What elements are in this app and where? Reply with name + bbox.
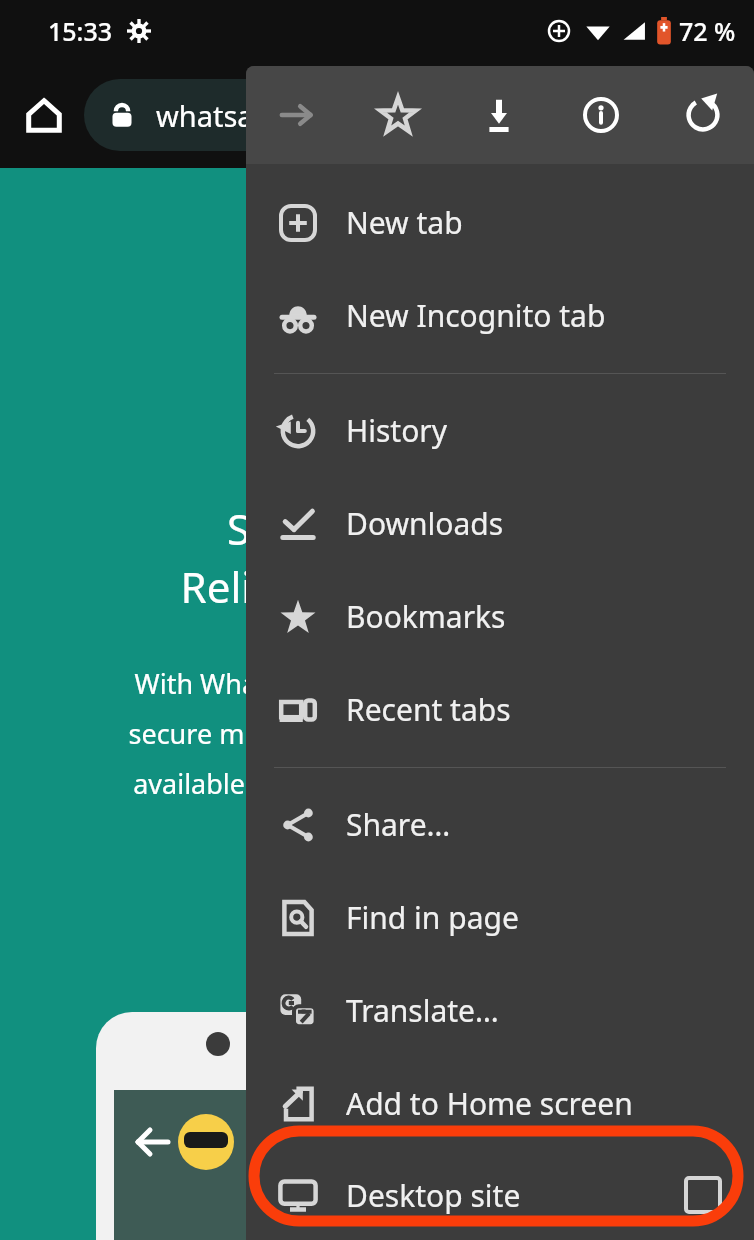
staticText: Simple. Secure. Reliable messaging. bbox=[0, 500, 754, 615]
button[interactable]: Share… bbox=[246, 778, 754, 871]
staticText: Add to Home screen bbox=[346, 1083, 722, 1124]
staticText: 15:33 bbox=[48, 14, 113, 48]
staticText: Recent tabs bbox=[346, 689, 722, 730]
button[interactable]: Translate… bbox=[246, 964, 754, 1057]
button[interactable]: Desktop site bbox=[246, 1150, 754, 1240]
staticText: Translate… bbox=[346, 990, 722, 1031]
button[interactable]: whatsapp.com bbox=[84, 79, 754, 151]
button[interactable]: Page info bbox=[550, 66, 652, 164]
button[interactable]: Find in page bbox=[246, 871, 754, 964]
staticText: Bookmarks bbox=[346, 596, 722, 637]
staticText: New Incognito tab bbox=[346, 295, 722, 336]
button[interactable]: Bookmarks bbox=[246, 570, 754, 663]
staticText: History bbox=[346, 410, 722, 451]
staticText: 72 % bbox=[679, 14, 736, 48]
button[interactable]: New Incognito tab bbox=[246, 269, 754, 362]
button[interactable]: Home bbox=[16, 87, 72, 143]
staticText: whatsapp.com bbox=[156, 96, 356, 135]
staticText: Desktop site bbox=[346, 1175, 684, 1216]
button[interactable]: Bookmark bbox=[347, 66, 448, 164]
button[interactable]: New tab bbox=[246, 176, 754, 269]
button[interactable]: Download bbox=[448, 66, 550, 164]
button[interactable]: Forward bbox=[246, 66, 347, 164]
button[interactable]: History bbox=[246, 384, 754, 477]
staticText: Find in page bbox=[346, 897, 722, 938]
staticText: Share… bbox=[346, 804, 722, 845]
staticText: With WhatsApp, you'll get fast, simple, … bbox=[0, 665, 754, 802]
staticText: Downloads bbox=[346, 503, 722, 544]
staticText: New tab bbox=[346, 202, 722, 243]
button[interactable]: Recent tabs bbox=[246, 663, 754, 756]
button[interactable]: Downloads bbox=[246, 477, 754, 570]
button[interactable]: Reload bbox=[652, 66, 754, 164]
button[interactable]: Add to Home screen bbox=[246, 1057, 754, 1150]
